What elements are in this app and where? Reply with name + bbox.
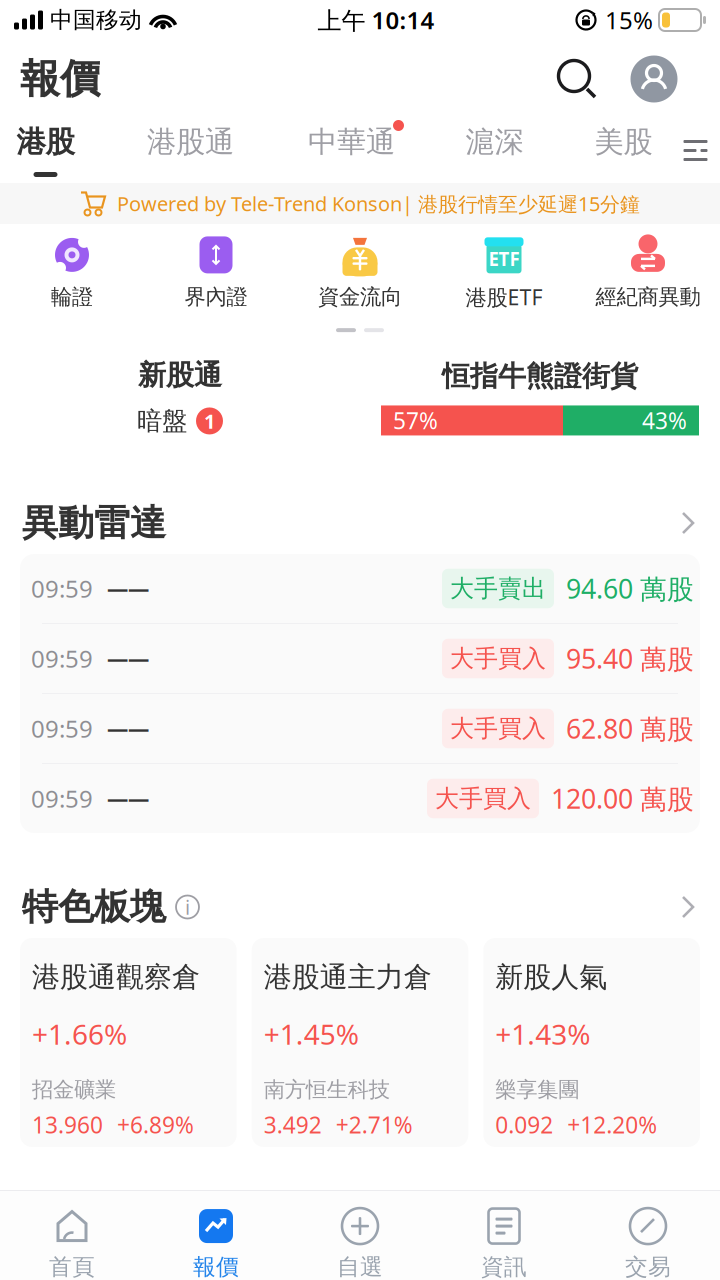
staticText: 09:59 [31,643,93,674]
button[interactable]: Search [554,56,600,102]
staticText: 上午 10:14 [317,4,434,36]
button[interactable]: 港股 [0,118,95,183]
button[interactable]: 港股通 [95,118,285,183]
staticText: 界內證 [184,284,247,310]
staticText: +12.20% [567,1110,657,1140]
button[interactable]: 界內證 [144,235,288,310]
staticText: 港股ETF [465,283,542,311]
staticText: 自選 [337,1253,383,1280]
staticText: 報價 [193,1253,239,1280]
button[interactable]: Profile [630,55,678,103]
button[interactable]: 經紀商異動 [576,235,720,310]
staticText: 大手買入 [450,714,546,743]
staticText: 暗盤 [137,405,187,436]
button[interactable]: 滬深 [417,118,571,183]
staticText: 新股人氣 [495,960,607,994]
staticText: +1.66% [32,1015,127,1053]
button[interactable]: 首頁 [0,1191,144,1280]
staticText: 94.60 萬股 [566,571,694,606]
button[interactable]: 交易 [576,1191,720,1280]
button[interactable]: ETF [432,234,576,311]
button[interactable]: 資訊 [432,1191,576,1280]
staticText: 62.80 萬股 [566,711,694,746]
button[interactable]: 新股通 [0,358,360,436]
staticText: 南方恒生科技 [264,1077,390,1103]
staticText: 招金礦業 [32,1077,116,1103]
staticText: —— [107,644,149,673]
button[interactable]: 港股通觀察倉 [20,938,237,1147]
staticText: 43% [642,405,687,435]
button[interactable]: Powered by Tele-Trend Konson| 港股行情至少延遲15… [0,183,720,224]
staticText: 09:59 [31,573,93,604]
button[interactable]: 異動雷達 [0,492,720,554]
button[interactable]: 中華通 [285,118,417,183]
staticText: 樂享集團 [495,1077,579,1103]
staticText: +6.89% [117,1110,194,1140]
staticText: 09:59 [31,783,93,814]
staticText: 經紀商異動 [595,284,700,310]
staticText: 美股 [594,124,652,160]
button[interactable]: More categories [675,118,720,183]
staticText: 異動雷達 [22,501,166,545]
staticText: 120.00 萬股 [551,781,694,816]
staticText: 中華通 [308,124,395,160]
staticText: 資訊 [481,1253,527,1280]
button[interactable]: 新股人氣 [483,938,700,1147]
button[interactable]: 資金流向 [288,235,432,310]
staticText: —— [107,784,149,813]
staticText: 15% [605,4,653,36]
staticText: 滬深 [465,124,523,160]
staticText: 3.492 [264,1110,322,1140]
staticText: 港股通觀察倉 [32,960,200,994]
staticText: i [185,894,190,920]
staticText: 1 [204,408,215,434]
staticText: 57% [393,405,438,435]
staticText: 新股通 [138,358,222,392]
staticText: 港股 [16,124,74,160]
staticText: 輪證 [51,284,93,310]
staticText: —— [107,574,149,603]
staticText: 港股通主力倉 [264,960,432,994]
staticText: —— [107,714,149,743]
staticText: 中国移动 [50,6,142,34]
staticText: 09:59 [31,713,93,744]
staticText: 95.40 萬股 [566,641,694,676]
staticText: +1.45% [264,1015,359,1053]
button[interactable]: 報價 [144,1191,288,1280]
button[interactable]: 自選 [288,1191,432,1280]
staticText: 大手買入 [435,784,531,813]
button[interactable]: 港股通主力倉 [252,938,468,1147]
staticText: Powered by Tele-Trend Konson| 港股行情至少延遲15… [117,190,640,217]
staticText: 大手買入 [450,644,546,673]
staticText: 港股通 [147,124,234,160]
staticText: +1.43% [495,1015,590,1053]
staticText: 報價 [20,54,100,103]
staticText: +2.71% [336,1110,413,1140]
button[interactable]: 美股 [571,118,675,183]
staticText: 13.960 [32,1110,103,1140]
staticText: 資金流向 [318,284,402,310]
staticText: 首頁 [49,1253,95,1280]
button[interactable]: 恒指牛熊證街貨 [360,359,720,435]
staticText: 交易 [625,1253,671,1280]
staticText: 恒指牛熊證街貨 [442,359,638,393]
staticText: 0.092 [495,1110,553,1140]
button[interactable]: 特色板塊 [0,876,720,938]
staticText: ETF [488,246,519,271]
staticText: 特色板塊 [22,885,166,929]
button[interactable]: 輪證 [0,235,144,310]
staticText: 大手賣出 [450,574,546,603]
